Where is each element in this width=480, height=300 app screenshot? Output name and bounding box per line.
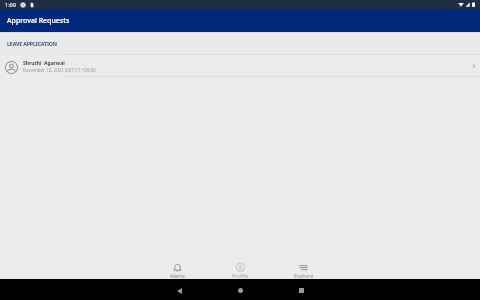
staticText: Approval Requests: [7, 16, 70, 26]
staticText: 1:09: [5, 1, 16, 8]
staticText: LEAVE APPLICATION: [7, 40, 57, 47]
button[interactable]: Approval Requests: [0, 9, 480, 32]
button[interactable]: Alerts: [146, 255, 209, 279]
button[interactable]: Shruthi Agarwal: [0, 55, 480, 77]
button[interactable]: Home: [210, 279, 271, 300]
staticText: Explore: [294, 272, 314, 279]
staticText: Alerts: [170, 272, 185, 279]
button[interactable]: Recent apps: [271, 279, 332, 300]
button[interactable]: Profile: [209, 255, 272, 279]
button[interactable]: Back: [149, 279, 210, 300]
staticText: Shruthi Agarwal: [23, 60, 65, 67]
staticText: Profile: [232, 272, 249, 279]
staticText: December 12, 2021 0:07:17 +00:00: [23, 67, 96, 73]
button[interactable]: LEAVE APPLICATION: [0, 32, 64, 55]
button[interactable]: Explore: [272, 255, 335, 279]
